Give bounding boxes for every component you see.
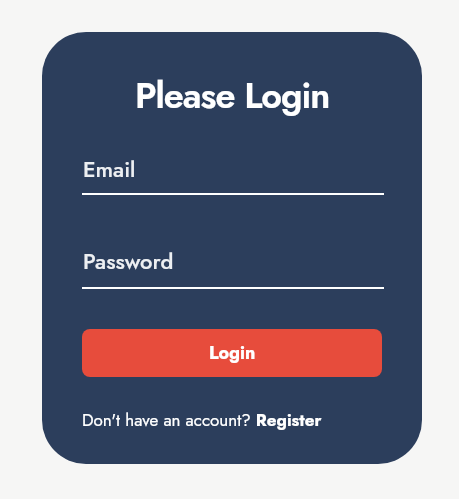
staticText: Email (83, 153, 136, 185)
staticText: Password (83, 245, 174, 277)
button[interactable]: Login (82, 329, 382, 377)
button[interactable]: Don't have an account? Register (82, 408, 322, 433)
staticText: Don't have an account? Register (82, 408, 322, 433)
staticText: Login (209, 340, 256, 366)
staticText: Please Login (135, 69, 330, 121)
